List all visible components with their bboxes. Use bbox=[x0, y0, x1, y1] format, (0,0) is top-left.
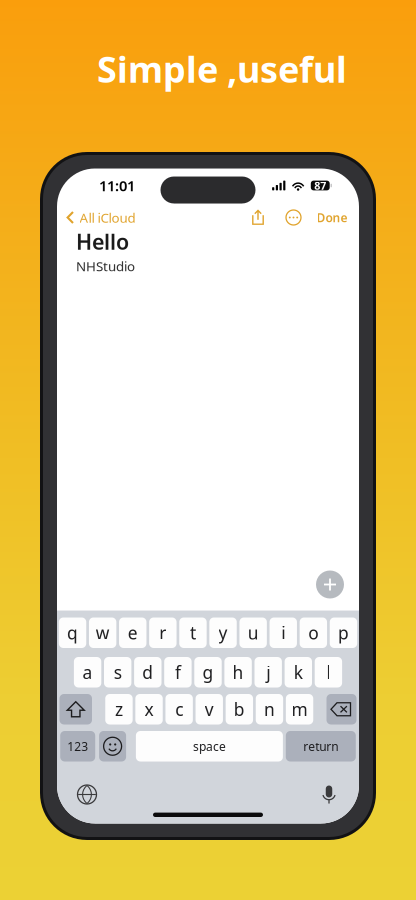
button[interactable]: q bbox=[59, 617, 86, 648]
button[interactable]: f bbox=[164, 657, 192, 687]
staticText: m bbox=[292, 698, 308, 721]
staticText: e bbox=[128, 621, 138, 644]
button[interactable]: r bbox=[149, 617, 176, 648]
staticText: l bbox=[326, 661, 330, 684]
button[interactable]: p bbox=[330, 617, 357, 648]
button[interactable]: 123 bbox=[60, 731, 95, 761]
staticText: y bbox=[218, 621, 227, 644]
button[interactable]: Emoji bbox=[99, 731, 126, 761]
staticText: w bbox=[96, 621, 110, 644]
button[interactable]: c bbox=[165, 694, 193, 724]
button[interactable]: return bbox=[286, 731, 356, 761]
button[interactable]: Done bbox=[316, 202, 348, 232]
button[interactable]: y bbox=[209, 617, 237, 648]
staticText: space bbox=[193, 738, 226, 754]
staticText: n bbox=[264, 698, 275, 721]
button[interactable]: j bbox=[254, 657, 282, 687]
staticText: f bbox=[175, 661, 181, 684]
button[interactable]: x bbox=[135, 694, 163, 724]
staticText: b bbox=[234, 698, 245, 721]
staticText: s bbox=[114, 661, 122, 684]
button[interactable]: i bbox=[269, 617, 297, 648]
button[interactable]: All iCloud bbox=[57, 202, 141, 232]
staticText: All iCloud bbox=[79, 209, 135, 226]
button[interactable]: e bbox=[119, 617, 146, 648]
button[interactable]: Change keyboard bbox=[72, 781, 102, 807]
staticText: d bbox=[142, 661, 153, 684]
staticText: 87 bbox=[314, 178, 326, 193]
button[interactable]: k bbox=[285, 657, 312, 687]
staticText: o bbox=[308, 621, 318, 644]
button[interactable]: w bbox=[89, 617, 116, 648]
staticText: Simple ,useful bbox=[97, 45, 347, 93]
button[interactable]: space bbox=[136, 731, 283, 761]
staticText: x bbox=[144, 698, 153, 721]
staticText: 11:01 bbox=[99, 176, 135, 195]
staticText: g bbox=[202, 661, 213, 684]
staticText: k bbox=[294, 661, 303, 684]
button[interactable]: u bbox=[239, 617, 267, 648]
button[interactable]: z bbox=[105, 694, 133, 724]
staticText: h bbox=[233, 661, 244, 684]
staticText: c bbox=[175, 698, 183, 721]
staticText: v bbox=[205, 698, 214, 721]
staticText: p bbox=[338, 621, 349, 644]
button[interactable]: d bbox=[134, 657, 161, 687]
button[interactable]: g bbox=[194, 657, 222, 687]
staticText: Hello bbox=[76, 227, 129, 256]
staticText: a bbox=[83, 661, 93, 684]
button[interactable]: t bbox=[179, 617, 207, 648]
button[interactable]: a bbox=[74, 657, 101, 687]
button[interactable]: n bbox=[256, 694, 283, 724]
button[interactable]: v bbox=[196, 694, 223, 724]
staticText: j bbox=[266, 661, 270, 684]
staticText: return bbox=[303, 738, 338, 754]
staticText: u bbox=[248, 621, 259, 644]
button[interactable]: Delete bbox=[326, 694, 356, 724]
staticText: Done bbox=[316, 209, 347, 225]
staticText: r bbox=[159, 621, 166, 644]
button[interactable]: Dictate bbox=[314, 781, 344, 807]
staticText: NHStudio bbox=[76, 257, 135, 275]
button[interactable]: o bbox=[300, 617, 327, 648]
button[interactable]: b bbox=[226, 694, 253, 724]
staticText: 123 bbox=[67, 738, 88, 754]
staticText: z bbox=[115, 698, 123, 721]
staticText: i bbox=[281, 621, 285, 644]
button[interactable]: h bbox=[224, 657, 252, 687]
staticText: q bbox=[67, 621, 78, 644]
button[interactable]: Shift bbox=[59, 694, 92, 724]
staticText: t bbox=[190, 621, 196, 644]
button[interactable]: More bbox=[280, 202, 306, 232]
button[interactable]: s bbox=[104, 657, 131, 687]
button[interactable]: Add bbox=[316, 570, 344, 598]
button[interactable]: m bbox=[286, 694, 313, 724]
button[interactable]: l bbox=[315, 657, 342, 687]
button[interactable]: Share bbox=[245, 202, 271, 232]
